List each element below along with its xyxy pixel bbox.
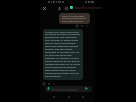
button[interactable]: Back — [51, 95, 56, 99]
staticText: Peux-tu m'expliquer comment fonctionne c… — [62, 14, 87, 23]
button[interactable]: Copy — [75, 24, 78, 27]
button[interactable]: Il s'agit d'un texte assez long qui decr… — [43, 29, 83, 80]
button[interactable]: Nouvelle conversation — [75, 6, 103, 10]
button[interactable]: Retry — [85, 24, 88, 27]
staticText: Posez votre question — [52, 88, 78, 92]
button[interactable]: Close — [41, 5, 47, 11]
button[interactable]: Send — [85, 87, 88, 90]
button[interactable]: Like — [47, 82, 50, 85]
button[interactable]: Share — [52, 82, 55, 85]
button[interactable]: Edit — [80, 24, 83, 27]
button[interactable]: Options — [63, 5, 69, 11]
button[interactable]: Peux-tu m'expliquer comment fonctionne c… — [59, 13, 90, 24]
button[interactable]: Voice input — [47, 87, 50, 90]
staticText: Nouvelle conversation — [75, 6, 103, 10]
button[interactable]: Home — [66, 95, 71, 99]
button[interactable]: Recents — [80, 95, 85, 99]
button[interactable]: Assistant — [70, 6, 73, 9]
button[interactable]: Copy — [42, 82, 45, 85]
button[interactable]: Account — [56, 5, 62, 11]
button[interactable]: Voice input — [45, 86, 92, 92]
staticText: Il s'agit d'un texte assez long qui decr… — [45, 30, 81, 78]
